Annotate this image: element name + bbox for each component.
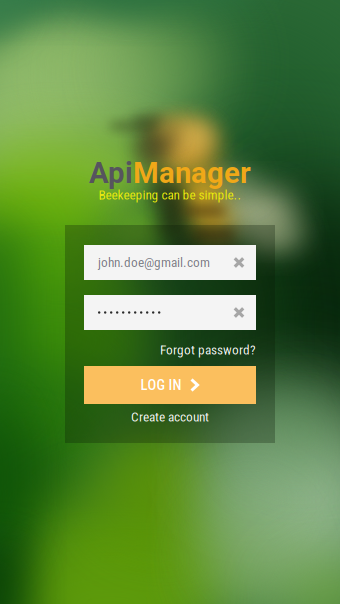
button[interactable]: Clear text [222,295,256,330]
button[interactable]: Forgot password? [160,343,256,357]
staticText: Manager [133,156,251,190]
button[interactable]: Clear text [222,245,256,280]
button[interactable]: Create account [131,410,209,424]
staticText: Create account [131,409,209,425]
staticText: Forgot password? [160,342,256,358]
staticText: Beekeeping can be simple.. [98,187,241,203]
button[interactable]: LOG IN [84,366,256,404]
staticText: john.doe@gmail.com [98,255,210,270]
staticText: Api [89,156,133,190]
staticText: LOG IN [140,376,181,394]
